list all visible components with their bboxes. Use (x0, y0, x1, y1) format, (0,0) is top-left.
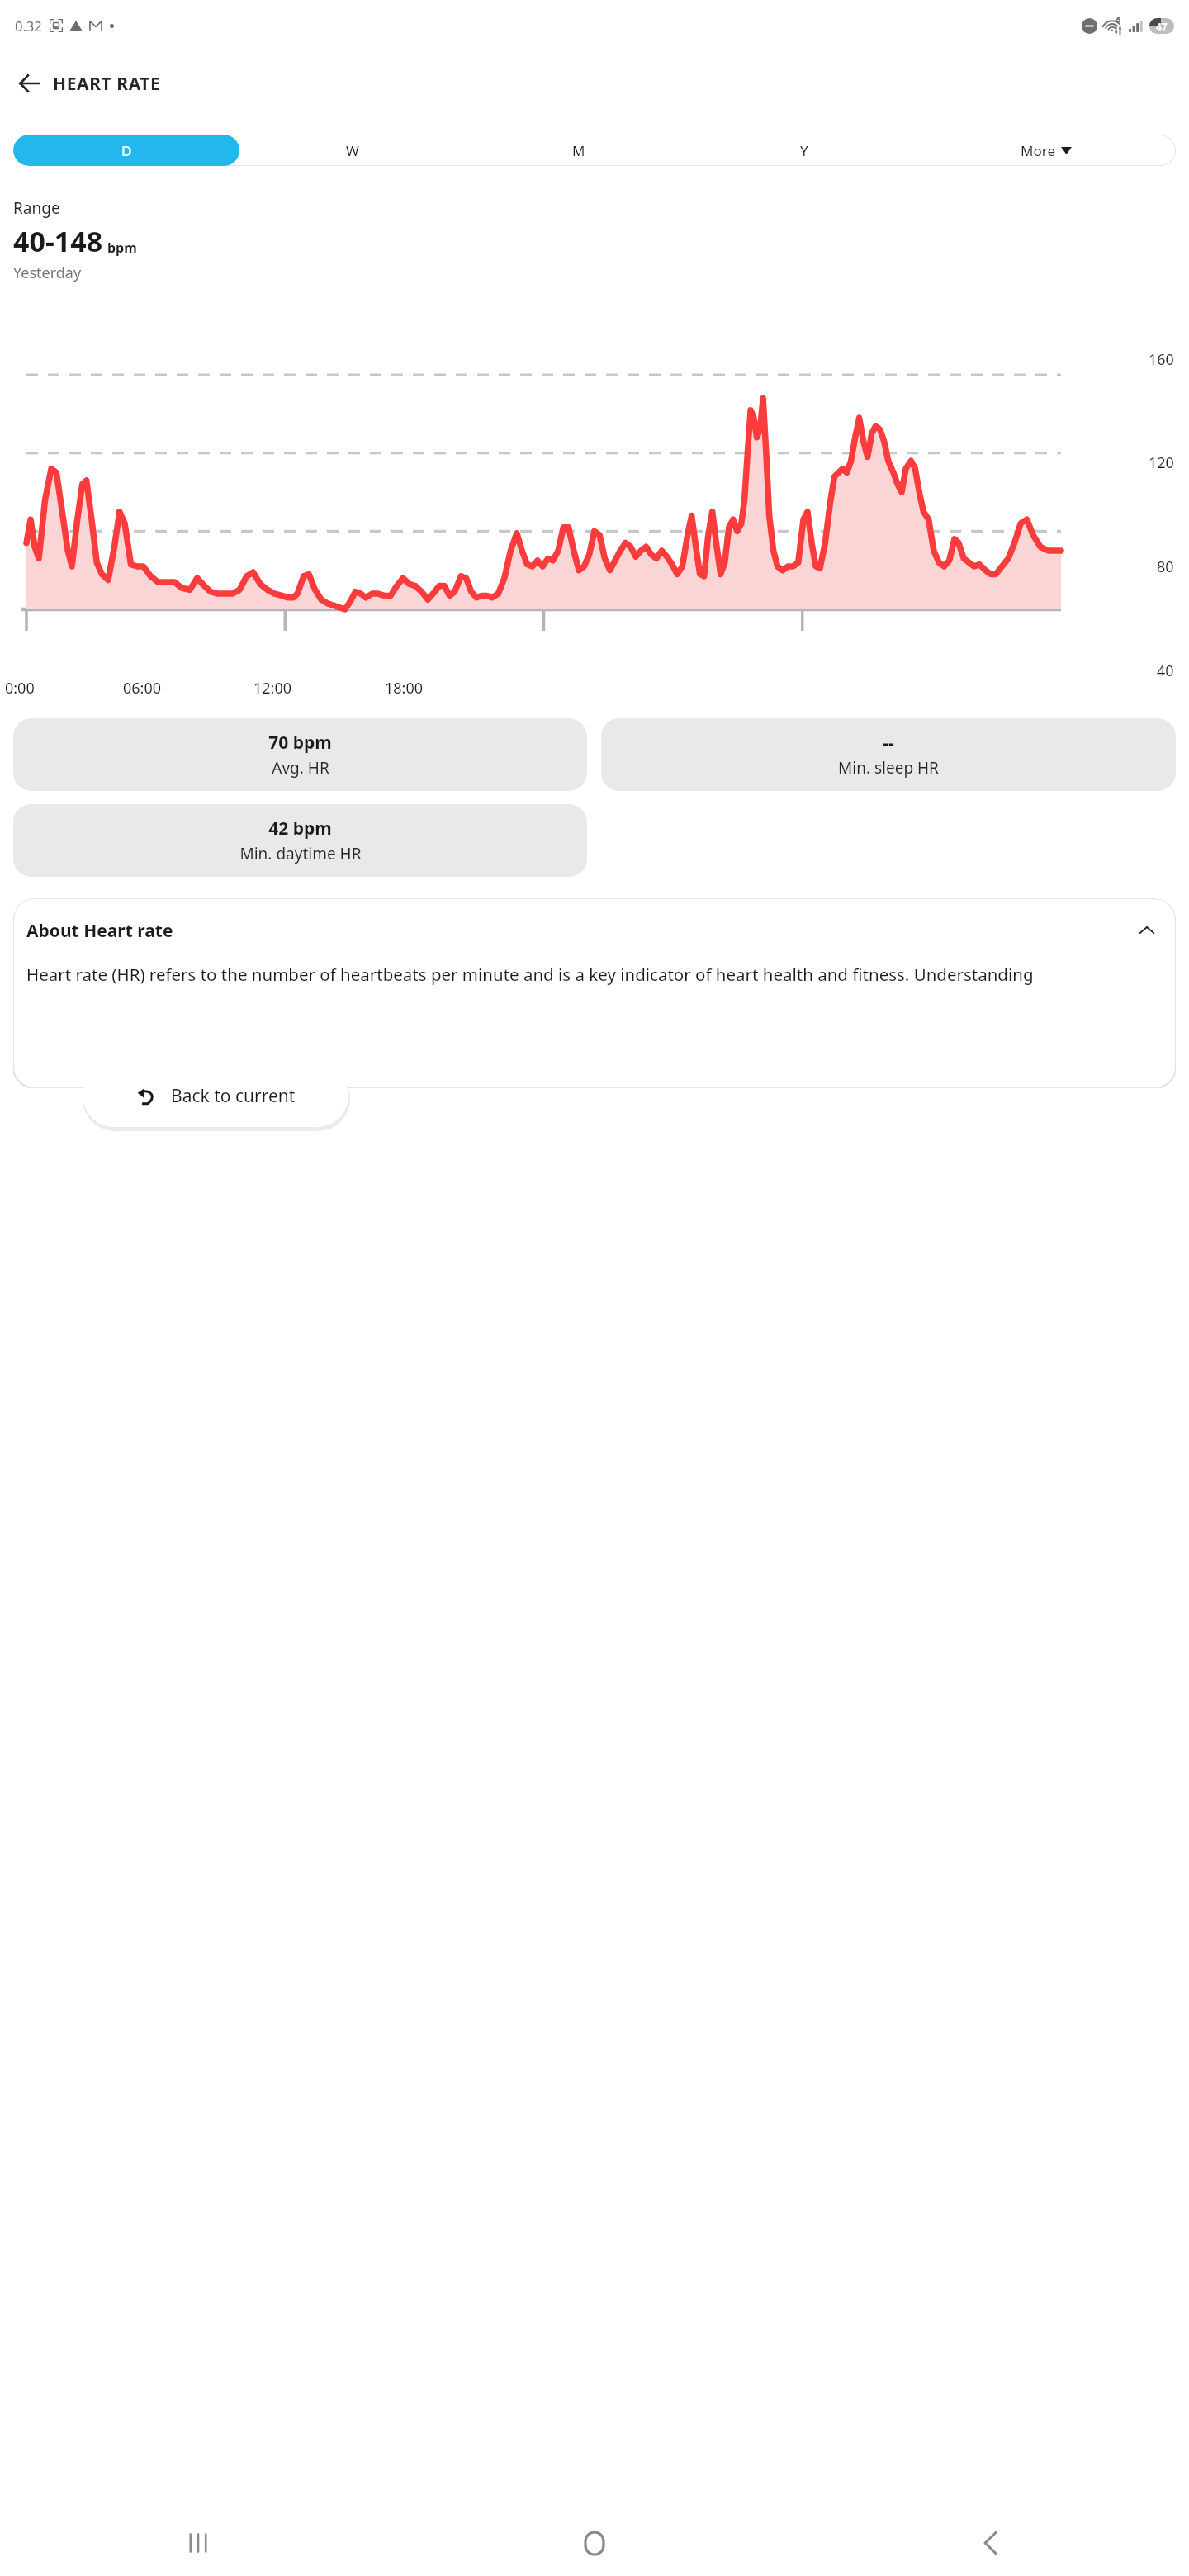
staticText: Range (13, 197, 60, 219)
staticText: About Heart rate (26, 919, 173, 943)
staticText: W (346, 141, 359, 160)
staticText: 120 (1149, 452, 1174, 473)
staticText: Yesterday (13, 263, 82, 283)
other: Collapse (1135, 918, 1159, 943)
staticText: -- (883, 731, 894, 755)
button[interactable]: Y (691, 135, 917, 166)
button[interactable]: More (917, 135, 1176, 166)
staticText: Min. sleep HR (838, 757, 939, 779)
staticText: Back to current (171, 1084, 296, 1108)
button[interactable]: Back (7, 60, 53, 107)
staticText: 42 bpm (268, 817, 332, 841)
staticText: 40 (1157, 661, 1174, 681)
button[interactable]: M (466, 135, 691, 166)
staticText: Avg. HR (272, 757, 329, 779)
staticText: bpm (107, 239, 137, 257)
staticText: Y (800, 141, 808, 160)
button[interactable]: Back to current (83, 1064, 348, 1127)
staticText: 40-148 (13, 222, 103, 260)
button[interactable]: Recent apps (0, 2510, 396, 2576)
button[interactable]: Home (396, 2510, 793, 2576)
staticText: HEART RATE (53, 72, 161, 96)
staticText: M (572, 141, 585, 160)
staticText: 47 (1156, 20, 1168, 33)
button[interactable]: About Heart rate (13, 898, 1176, 963)
staticText: 0.32 (15, 17, 42, 35)
button[interactable]: Back (793, 2510, 1189, 2576)
staticText: Min. daytime HR (239, 843, 362, 864)
button[interactable]: W (239, 135, 466, 166)
staticText: 12:00 (253, 678, 292, 698)
staticText: 0:00 (5, 678, 35, 698)
staticText: 70 bpm (268, 731, 332, 755)
button[interactable]: -- (601, 718, 1176, 791)
button[interactable]: D (13, 135, 239, 166)
staticText: 80 (1157, 556, 1174, 577)
button[interactable]: 42 bpm (13, 804, 587, 877)
staticText: 06:00 (123, 678, 162, 698)
staticText: D (121, 141, 132, 160)
staticText: More (1021, 141, 1055, 160)
button[interactable]: 70 bpm (13, 718, 587, 791)
staticText: 18:00 (385, 678, 424, 698)
staticText: Heart rate (HR) refers to the number of … (26, 963, 1034, 986)
staticText: 160 (1149, 349, 1174, 370)
